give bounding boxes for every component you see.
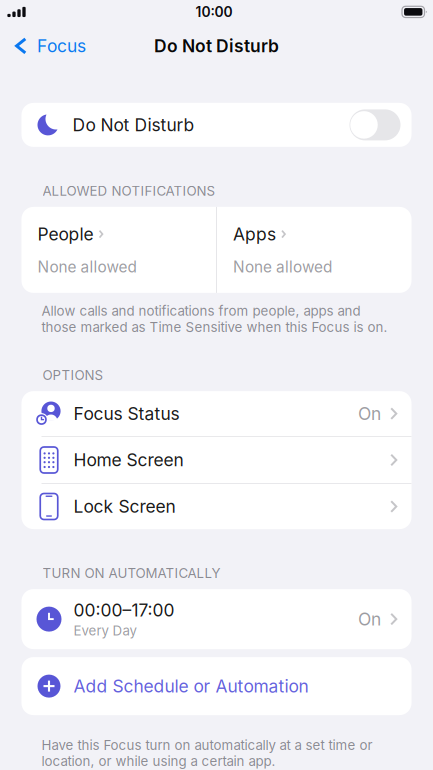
- staticText: None allowed: [233, 258, 332, 276]
- button[interactable]: Home Screen: [21, 437, 411, 483]
- staticText: Home Screen: [73, 449, 183, 471]
- staticText: On: [358, 609, 381, 630]
- staticText: People: [37, 224, 93, 245]
- staticText: Focus Status: [73, 403, 179, 424]
- staticText: Allow calls and notifications from peopl…: [41, 303, 387, 335]
- button[interactable]: Lock Screen: [21, 484, 411, 529]
- staticText: ALLOWED NOTIFICATIONS: [42, 183, 215, 199]
- staticText: Focus: [37, 35, 86, 56]
- staticText: Apps: [233, 224, 276, 245]
- staticText: Lock Screen: [73, 496, 175, 517]
- button[interactable]: Apps: [217, 210, 411, 290]
- staticText: Do Not Disturb: [154, 35, 279, 56]
- button[interactable]: 00:00–17:00: [21, 589, 411, 649]
- staticText: Every Day: [73, 623, 136, 639]
- button[interactable]: People: [21, 210, 216, 290]
- staticText: 00:00–17:00: [73, 599, 174, 621]
- button[interactable]: Do Not Disturb: [21, 103, 411, 147]
- button[interactable]: Add Schedule or Automation: [21, 657, 411, 715]
- staticText: Do Not Disturb: [72, 114, 194, 135]
- button[interactable]: Focus: [0, 27, 86, 64]
- staticText: Add Schedule or Automation: [73, 676, 308, 697]
- staticText: On: [358, 403, 381, 424]
- staticText: Have this Focus turn on automatically at…: [41, 737, 372, 769]
- staticText: TURN ON AUTOMATICALLY: [42, 565, 220, 581]
- staticText: OPTIONS: [42, 367, 103, 383]
- button[interactable]: Focus Status: [21, 391, 411, 436]
- staticText: 10:00: [195, 3, 232, 20]
- staticText: None allowed: [37, 258, 136, 276]
